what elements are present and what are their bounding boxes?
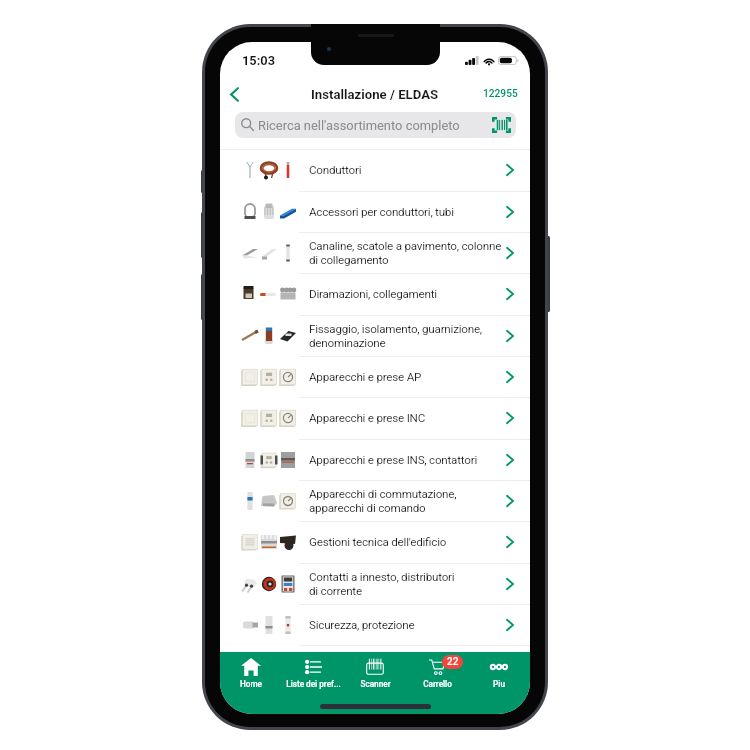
- button[interactable]: Apparecchi e prese INC: [220, 397, 530, 438]
- staticText: Home: [240, 679, 262, 689]
- staticText: Accessori per conduttori, tubi: [309, 205, 454, 219]
- staticText: Apparecchi e prese AP: [309, 370, 422, 384]
- staticText: Apparecchi e prese INC: [309, 411, 426, 425]
- staticText: Diramazioni, collegamenti: [309, 287, 437, 301]
- staticText: 15:03: [242, 53, 275, 68]
- staticText: Contatti a innesto, distributori di corr…: [309, 570, 455, 598]
- staticText: Ricerca nell'assortimento completo: [258, 118, 460, 133]
- button[interactable]: Liste dei pref...: [282, 652, 344, 714]
- staticText: Piu: [493, 679, 505, 689]
- staticText: Conduttori: [309, 163, 362, 177]
- staticText: Liste dei pref...: [286, 679, 341, 689]
- button[interactable]: Ricerca nell'assortimento completo: [235, 112, 516, 138]
- staticText: Installazione / ELDAS: [311, 87, 439, 102]
- button[interactable]: Gestioni tecnica dell'edificio: [220, 521, 530, 562]
- staticText: Scanner: [360, 679, 391, 689]
- button[interactable]: Back: [220, 78, 250, 110]
- staticText: Fissaggio, isolamento, guarnizione, deno…: [309, 322, 502, 350]
- button[interactable]: Piu: [468, 652, 530, 714]
- button[interactable]: Diramazioni, collegamenti: [220, 273, 530, 314]
- button[interactable]: Sicurezza, protezione: [220, 604, 530, 645]
- button[interactable]: Apparecchi e prese AP: [220, 356, 530, 397]
- staticText: Apparecchi e prese INS, contattori: [309, 453, 477, 467]
- staticText: Canaline, scatole a pavimento, colonne d…: [309, 239, 502, 267]
- button[interactable]: Apparecchi di commutazione, apparecchi d…: [220, 480, 530, 521]
- button[interactable]: Scan barcode: [487, 112, 515, 138]
- button[interactable]: 22: [406, 652, 468, 714]
- staticText: 122955: [483, 88, 518, 100]
- staticText: Carrello: [423, 679, 452, 689]
- button[interactable]: Scanner: [344, 652, 406, 714]
- button[interactable]: Fissaggio, isolamento, guarnizione, deno…: [220, 315, 530, 356]
- staticText: Gestioni tecnica dell'edificio: [309, 535, 447, 549]
- staticText: 22: [447, 656, 459, 668]
- staticText: Sicurezza, protezione: [309, 618, 415, 632]
- button[interactable]: Apparecchi e prese INS, contattori: [220, 439, 530, 480]
- staticText: Apparecchi di commutazione, apparecchi d…: [309, 487, 502, 515]
- button[interactable]: Contatti a innesto, distributori di corr…: [220, 563, 530, 604]
- button[interactable]: Accessori per conduttori, tubi: [220, 191, 530, 232]
- button[interactable]: Conduttori: [220, 149, 530, 190]
- button[interactable]: Home: [220, 652, 282, 714]
- button[interactable]: Canaline, scatole a pavimento, colonne d…: [220, 232, 530, 273]
